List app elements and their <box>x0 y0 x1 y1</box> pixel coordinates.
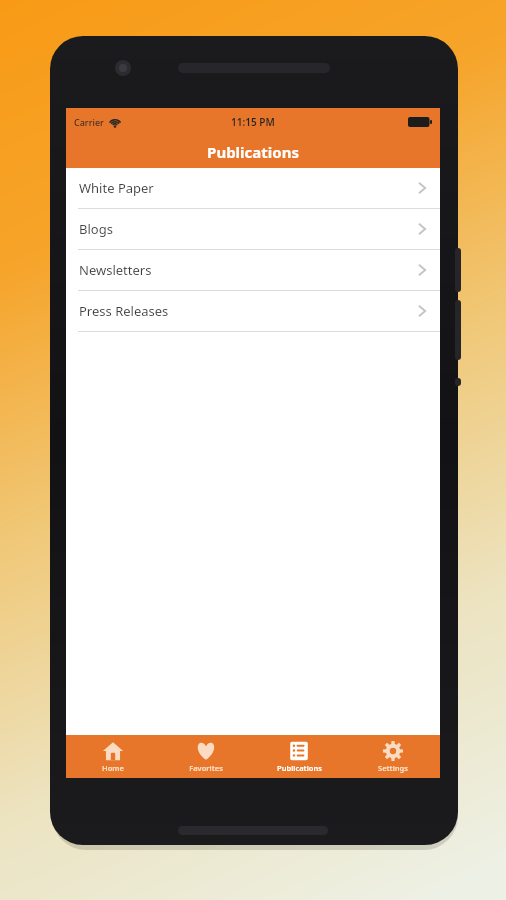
staticText: Settings <box>378 763 408 773</box>
staticText: Home <box>102 763 124 773</box>
button[interactable]: Settings <box>346 735 440 778</box>
button[interactable]: White Paper <box>66 168 440 209</box>
staticText: Press Releases <box>79 302 169 320</box>
staticText: Favorites <box>189 763 223 773</box>
button[interactable]: Home <box>66 735 159 778</box>
staticText: Publications <box>207 142 299 162</box>
staticText: Carrier <box>74 116 104 128</box>
button[interactable]: Blogs <box>66 209 440 250</box>
button[interactable]: Press Releases <box>66 291 440 332</box>
staticText: White Paper <box>79 179 154 197</box>
button[interactable]: Favorites <box>159 735 252 778</box>
staticText: 11:15 PM <box>231 115 275 129</box>
button[interactable]: Publications <box>252 735 346 778</box>
staticText: Newsletters <box>79 261 152 279</box>
staticText: Publications <box>277 763 322 773</box>
button[interactable]: Newsletters <box>66 250 440 291</box>
staticText: Blogs <box>79 220 113 238</box>
